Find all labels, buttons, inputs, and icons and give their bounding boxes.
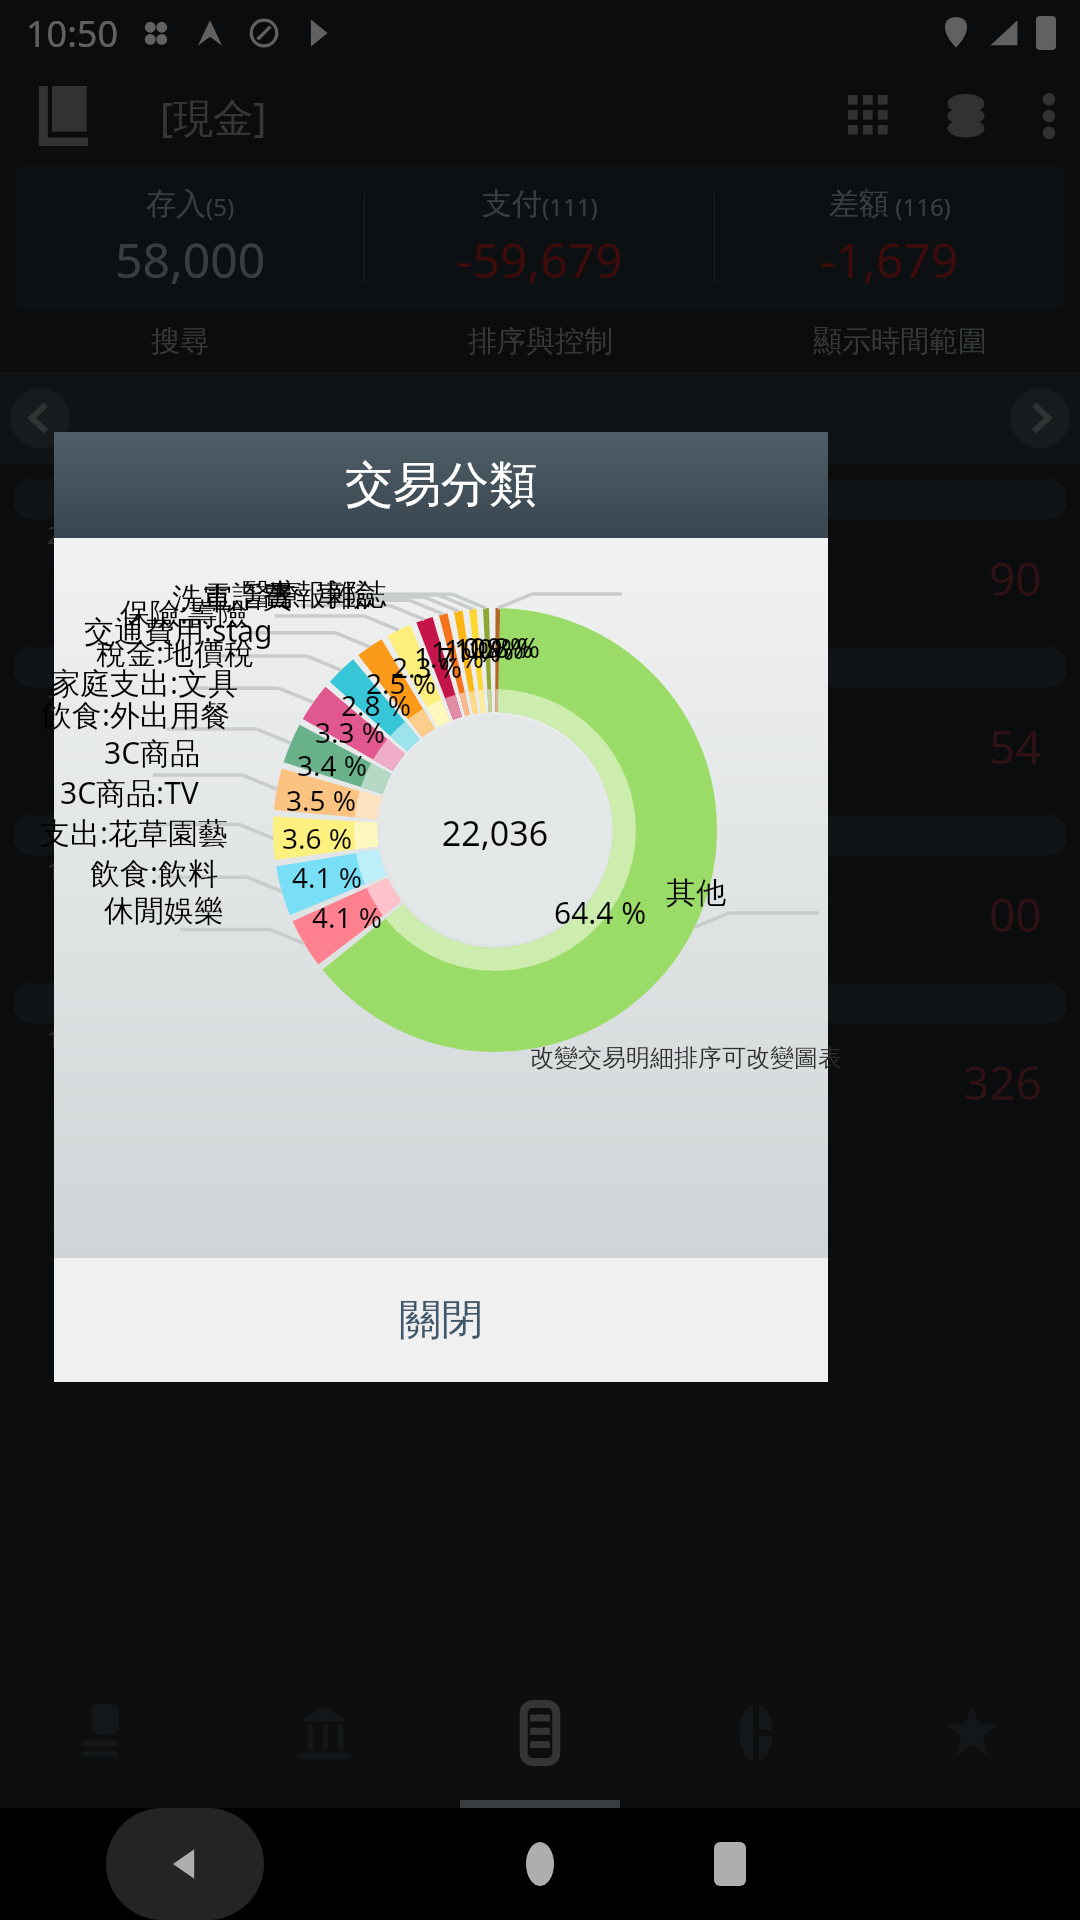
button[interactable]: Home <box>508 1832 572 1896</box>
staticText: 3.5 % <box>286 781 357 819</box>
staticText: 車險 <box>316 576 376 614</box>
staticText: 1.1 % <box>444 630 515 668</box>
button[interactable]: 1月 '21 <box>14 983 1066 1141</box>
staticText: 顯示時間範圍 <box>813 323 987 360</box>
button[interactable]: Previous <box>10 388 70 448</box>
staticText: 飲食:飲料 <box>90 852 219 893</box>
button[interactable]: Transactions <box>432 1658 648 1808</box>
staticText: 00 <box>989 883 1042 946</box>
staticText: 90 <box>989 547 1042 610</box>
button[interactable]: 2月 '21 <box>14 479 1066 637</box>
button[interactable]: Back <box>106 1808 264 1920</box>
staticText: 10:50 <box>26 9 119 58</box>
staticText: 關閉 <box>399 1294 483 1347</box>
staticText: 稅金:地價稅 <box>96 632 255 673</box>
staticText: 排序與控制 <box>468 323 613 360</box>
button[interactable]: Accounts <box>944 94 988 138</box>
button[interactable]: 2月 '21 <box>14 647 1066 805</box>
staticText: 休閒娛樂 <box>104 892 224 930</box>
staticText: 54 <box>989 715 1042 778</box>
staticText: 2月 '21 <box>47 519 121 550</box>
staticText: 2月 '21 <box>47 687 121 718</box>
staticText: 13 <box>51 886 118 965</box>
staticText: 0.8 % <box>470 628 541 666</box>
staticText: 3C商品:TV <box>60 772 199 813</box>
staticText: 週六 <box>61 797 107 805</box>
staticText: (111) <box>542 190 598 223</box>
staticText: 電話費 <box>202 578 292 616</box>
staticText: 23 <box>51 1054 118 1133</box>
button[interactable]: Apps <box>848 95 890 137</box>
staticText: 支付 <box>482 185 542 223</box>
staticText: 2.5 % <box>366 664 437 702</box>
staticText: 洗車 <box>172 580 232 618</box>
staticText: (116) <box>889 190 951 223</box>
staticText: 保險:壽險 <box>120 592 249 633</box>
staticText: 交易分類 <box>345 455 537 515</box>
staticText: 家庭支出:文具 <box>50 662 239 703</box>
staticText: 2.3 % <box>392 648 463 686</box>
staticText: 1.1 % <box>431 632 502 670</box>
button[interactable]: Next <box>1010 388 1070 448</box>
staticText: 1月 '21 <box>47 855 121 886</box>
staticText: 21 <box>51 718 118 797</box>
button[interactable]: 排序與控制 <box>360 310 720 372</box>
button[interactable]: 1月 '21 <box>14 815 1066 973</box>
staticText: 其他 <box>666 874 726 912</box>
staticText: 戈億 <box>154 697 238 750</box>
staticText: 飲食:買菜 <box>202 588 326 628</box>
staticText: 1.7 % <box>414 638 485 676</box>
staticText: 3.3 % <box>315 713 386 751</box>
staticText: (5) <box>206 190 235 223</box>
staticText: 3.4 % <box>297 746 368 784</box>
staticText: 4.1 % <box>312 898 383 936</box>
staticText: 飲食:買菜 <box>202 756 326 796</box>
button[interactable]: 關閉 <box>54 1258 828 1382</box>
staticText: 64.4 % <box>554 892 647 933</box>
staticText: 飲食:外出用餐 <box>42 694 231 735</box>
staticText: 改變交易明細排序可改變圖表 <box>530 1043 842 1073</box>
staticText: 存入 <box>146 185 206 223</box>
staticText: 4.1 % <box>292 858 363 896</box>
staticText: 326 <box>963 1051 1042 1114</box>
button[interactable]: 存入 <box>16 166 1064 310</box>
staticText: 21 <box>51 550 118 629</box>
button[interactable]: Recents <box>698 1832 762 1896</box>
staticText: 差額 <box>829 185 889 223</box>
staticText: 2.8 % <box>341 686 412 724</box>
staticText: 交通費用:stag <box>84 610 273 651</box>
button[interactable]: Ledger <box>34 86 94 146</box>
staticText: 22,036 <box>430 810 560 856</box>
staticText: [現金] <box>160 89 267 144</box>
staticText: 0.9 % <box>463 628 534 666</box>
staticText: -1,679 <box>820 227 959 292</box>
staticText: 週六 <box>61 629 107 637</box>
staticText: 戈億 <box>154 529 238 582</box>
staticText: 醫療 <box>242 576 302 614</box>
staticText: 戈億 <box>154 865 238 918</box>
staticText: -59,679 <box>457 227 623 292</box>
button[interactable]: 顯示時間範圍 <box>720 310 1080 372</box>
staticText: 58,000 <box>115 227 266 292</box>
staticText: 1.0 % <box>454 629 525 667</box>
staticText: 書報雜誌 <box>266 576 386 614</box>
staticText: 3C商品 <box>104 732 201 773</box>
button[interactable]: 搜尋 <box>0 310 360 372</box>
staticText: 搜尋 <box>151 323 209 360</box>
staticText: 支出:花草園藝 <box>40 812 229 853</box>
staticText: 3.6 % <box>282 819 353 857</box>
staticText: 1月 '21 <box>47 1023 121 1054</box>
button[interactable]: More options <box>1042 93 1056 139</box>
staticText: 飲食:買菜 <box>202 924 326 964</box>
